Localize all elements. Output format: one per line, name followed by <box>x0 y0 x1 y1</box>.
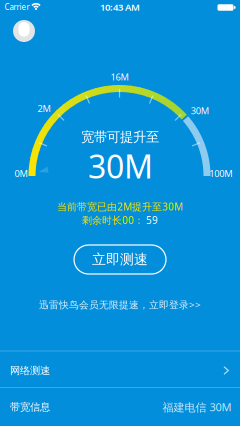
staticText: 宽带可提升至 <box>81 129 159 145</box>
button[interactable]: 网络测速 <box>0 352 240 388</box>
button[interactable]: 立即测速 <box>74 245 166 274</box>
staticText: 迅雷快鸟会员无限提速，立即登录>> <box>39 298 201 311</box>
staticText: 100M <box>209 167 232 180</box>
staticText: 2M <box>37 102 50 115</box>
staticText: 30M <box>191 104 209 117</box>
staticText: 30M <box>88 144 153 188</box>
button[interactable]: 带宽信息 <box>0 388 240 425</box>
staticText: 10:43 AM <box>100 0 140 14</box>
staticText: 0M <box>14 167 27 180</box>
staticText: Carrier <box>4 2 29 12</box>
staticText: 剩余时长00： <box>82 213 144 227</box>
button[interactable]: 迅雷快鸟会员无限提速，立即登录>> <box>20 296 220 312</box>
staticText: 带宽信息 <box>10 400 50 413</box>
staticText: 立即测速 <box>92 251 148 268</box>
staticText: 福建电信 30M <box>162 399 231 415</box>
staticText: 59 <box>146 213 158 227</box>
staticText: 当前带宽已由2M提升至30M <box>57 200 183 213</box>
staticText: 网络测速 <box>10 364 50 377</box>
staticText: 16M <box>110 71 128 83</box>
button[interactable]: 个人中心 <box>13 20 35 42</box>
